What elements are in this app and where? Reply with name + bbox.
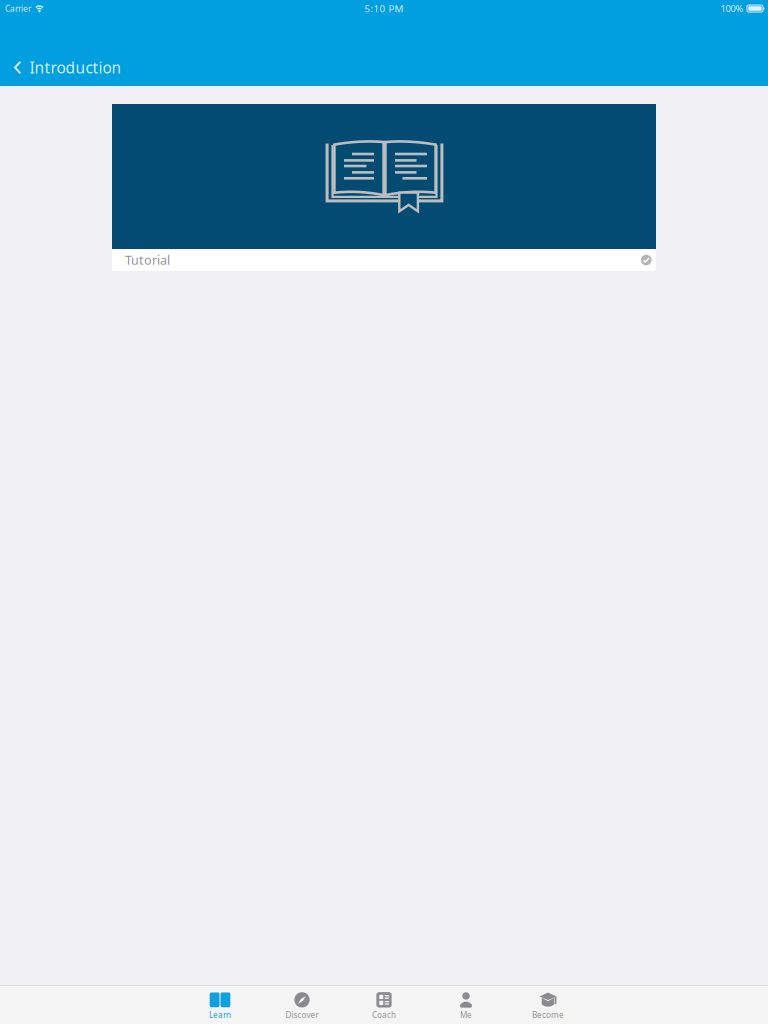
button[interactable]: Become [507,986,589,1024]
staticText: Tutorial [125,251,170,269]
staticText: Introduction [29,57,121,78]
staticText: Carrier [5,3,31,14]
staticText: Become [532,1009,564,1020]
button[interactable]: Discover [261,986,343,1024]
button[interactable]: Back to Introduction [0,16,133,82]
staticText: Discover [285,1009,318,1020]
button[interactable]: Tutorial [112,104,656,271]
button[interactable]: Learn [179,986,261,1024]
staticText: Learn [209,1009,231,1020]
staticText: Me [460,1009,472,1020]
staticText: 5:10 PM [364,2,403,15]
staticText: 100% [720,2,743,15]
staticText: Coach [372,1009,396,1020]
button[interactable]: Coach [343,986,425,1024]
button[interactable]: Me [425,986,507,1024]
